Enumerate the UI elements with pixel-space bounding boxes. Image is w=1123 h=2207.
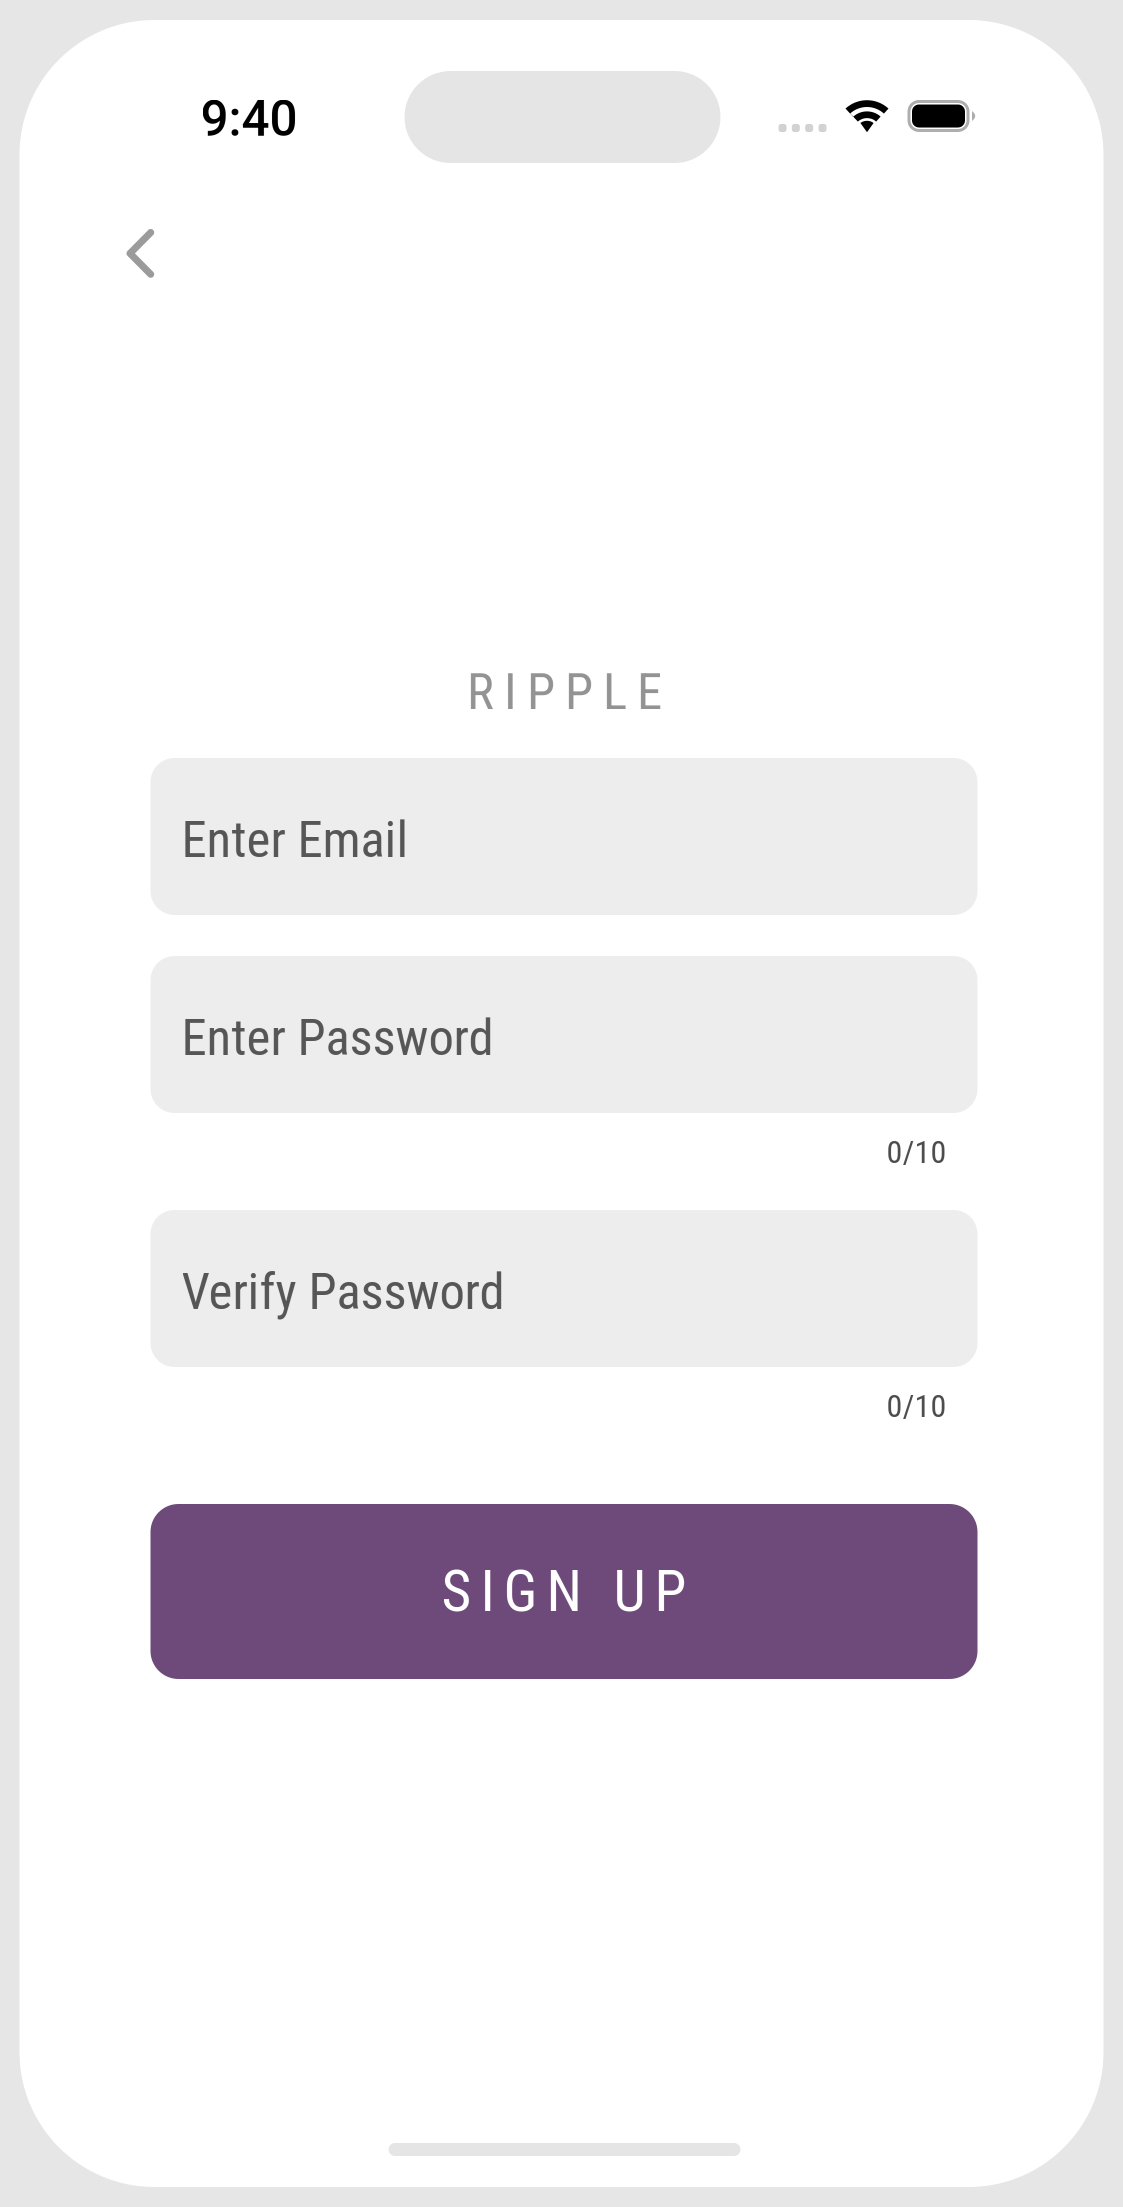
staticText: 9:40 — [200, 90, 297, 148]
staticText: Verify Password — [181, 1262, 504, 1321]
staticText: RIPPLE — [467, 662, 662, 722]
button[interactable]: Verify Password — [150, 1210, 977, 1367]
button[interactable]: Enter Password — [150, 956, 977, 1113]
button[interactable]: SIGN UP — [150, 1504, 977, 1679]
button[interactable]: Back — [88, 201, 192, 305]
staticText: 0/10 — [886, 1133, 946, 1171]
staticText: SIGN UP — [441, 1558, 686, 1625]
staticText: 0/10 — [886, 1387, 946, 1425]
button[interactable]: Enter Email — [150, 758, 977, 915]
staticText: Enter Password — [181, 1008, 493, 1067]
staticText: Enter Email — [181, 810, 408, 869]
